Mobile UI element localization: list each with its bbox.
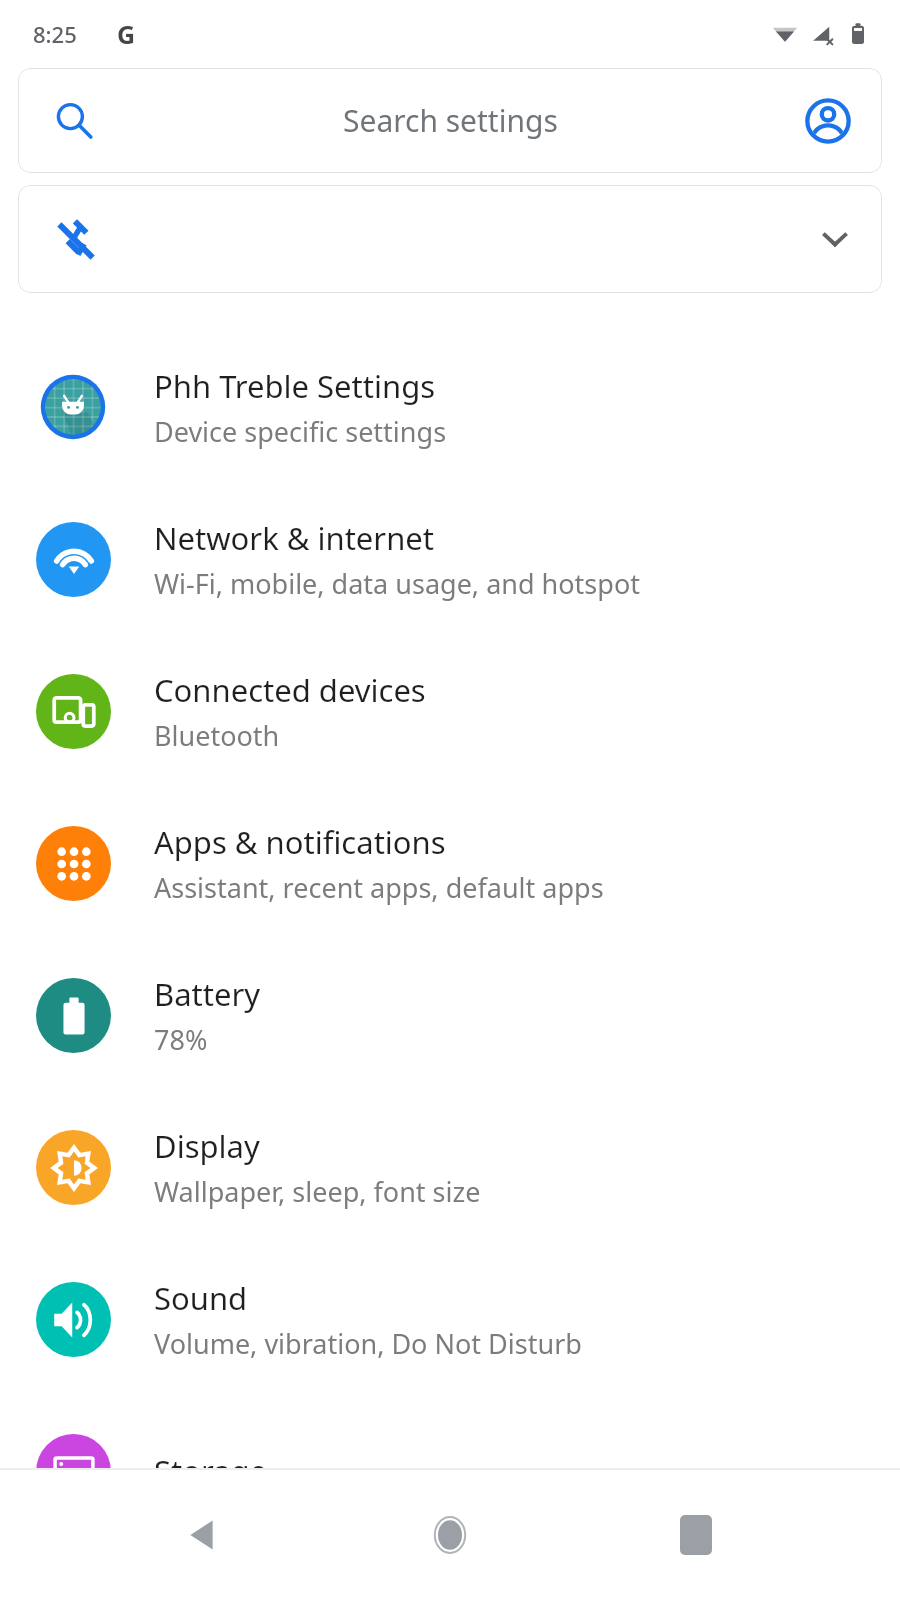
staticText: Phh Treble Settings	[154, 365, 436, 407]
button[interactable]: Battery	[0, 939, 900, 1091]
staticText: Apps & notifications	[154, 821, 446, 863]
other: Expand	[818, 222, 852, 256]
button[interactable]: Battery saver	[18, 185, 882, 293]
button[interactable]: Account	[800, 93, 856, 149]
staticText: 8:25	[33, 19, 77, 49]
button[interactable]: Connected devices	[0, 635, 900, 787]
staticText: Volume, vibration, Do Not Disturb	[154, 1325, 582, 1362]
button[interactable]: Network & internet	[0, 483, 900, 635]
staticText: G	[117, 17, 136, 51]
staticText: Display	[154, 1125, 260, 1167]
button[interactable]: Phh Treble Settings	[0, 331, 900, 483]
button[interactable]: Display	[0, 1091, 900, 1243]
staticText: Network & internet	[154, 517, 434, 559]
button[interactable]: Back	[162, 1493, 246, 1577]
staticText: Search settings	[343, 100, 558, 141]
staticText: Storage	[154, 1450, 268, 1492]
staticText: Bluetooth	[154, 717, 280, 754]
staticText: Battery	[154, 973, 261, 1015]
staticText: Sound	[154, 1277, 248, 1319]
button[interactable]: Storage	[0, 1395, 900, 1547]
staticText: Wi-Fi, mobile, data usage, and hotspot	[154, 565, 640, 602]
button[interactable]: Home	[408, 1493, 492, 1577]
staticText: Assistant, recent apps, default apps	[154, 869, 604, 906]
staticText: Connected devices	[154, 669, 426, 711]
button[interactable]: Recents	[654, 1493, 738, 1577]
button[interactable]: Apps & notifications	[0, 787, 900, 939]
staticText: 78%	[154, 1021, 208, 1058]
staticText: Wallpaper, sleep, font size	[154, 1173, 481, 1210]
staticText: Device specific settings	[154, 413, 447, 450]
button[interactable]: Search	[18, 68, 882, 173]
other: Battery saver	[50, 213, 102, 265]
button[interactable]: Sound	[0, 1243, 900, 1395]
other: Search	[54, 101, 94, 141]
